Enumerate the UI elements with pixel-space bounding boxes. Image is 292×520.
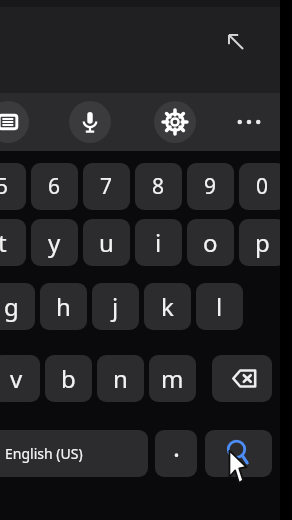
- staticText: l: [216, 290, 223, 323]
- button[interactable]: j: [92, 283, 139, 330]
- button[interactable]: b: [45, 355, 92, 402]
- staticText: h: [56, 290, 71, 323]
- button[interactable]: 9: [187, 163, 234, 210]
- staticText: 8: [152, 172, 165, 201]
- button[interactable]: n: [97, 355, 144, 402]
- button[interactable]: i: [135, 219, 182, 266]
- button[interactable]: Clipboard: [0, 101, 29, 143]
- button[interactable]: g: [0, 283, 35, 330]
- staticText: k: [161, 290, 174, 323]
- button[interactable]: p: [239, 219, 286, 266]
- button[interactable]: v: [0, 355, 40, 402]
- staticText: g: [4, 290, 19, 323]
- staticText: ·: [173, 436, 180, 471]
- button[interactable]: k: [144, 283, 191, 330]
- button[interactable]: Backspace: [212, 355, 272, 402]
- button[interactable]: t: [0, 219, 26, 266]
- button[interactable]: Settings: [154, 101, 196, 143]
- staticText: 0: [256, 172, 269, 201]
- staticText: 7: [100, 172, 113, 201]
- button[interactable]: o: [187, 219, 234, 266]
- button[interactable]: u: [83, 219, 130, 266]
- staticText: o: [203, 226, 218, 259]
- button[interactable]: 6: [31, 163, 78, 210]
- button[interactable]: 7: [83, 163, 130, 210]
- staticText: b: [61, 362, 76, 395]
- button[interactable]: 5: [0, 163, 26, 210]
- button[interactable]: h: [40, 283, 87, 330]
- button[interactable]: m: [149, 355, 196, 402]
- staticText: 9: [204, 172, 217, 201]
- staticText: v: [10, 362, 23, 395]
- staticText: y: [48, 226, 61, 259]
- staticText: j: [112, 290, 119, 323]
- button[interactable]: 8: [135, 163, 182, 210]
- staticText: p: [255, 226, 270, 259]
- button[interactable]: 0: [239, 163, 286, 210]
- staticText: 6: [48, 172, 61, 201]
- button[interactable]: Search: [205, 430, 272, 477]
- staticText: 5: [0, 172, 9, 201]
- button[interactable]: y: [31, 219, 78, 266]
- button[interactable]: Voice input: [69, 101, 111, 143]
- staticText: m: [161, 362, 184, 395]
- button[interactable]: l: [196, 283, 243, 330]
- staticText: n: [113, 362, 128, 395]
- staticText: t: [0, 226, 7, 259]
- button[interactable]: Resize keyboard: [219, 25, 253, 59]
- button[interactable]: More options: [228, 101, 270, 143]
- button[interactable]: ·: [155, 430, 197, 477]
- staticText: English (US): [5, 444, 83, 463]
- staticText: u: [99, 226, 114, 259]
- staticText: i: [155, 226, 162, 259]
- button[interactable]: English (US): [0, 430, 148, 477]
